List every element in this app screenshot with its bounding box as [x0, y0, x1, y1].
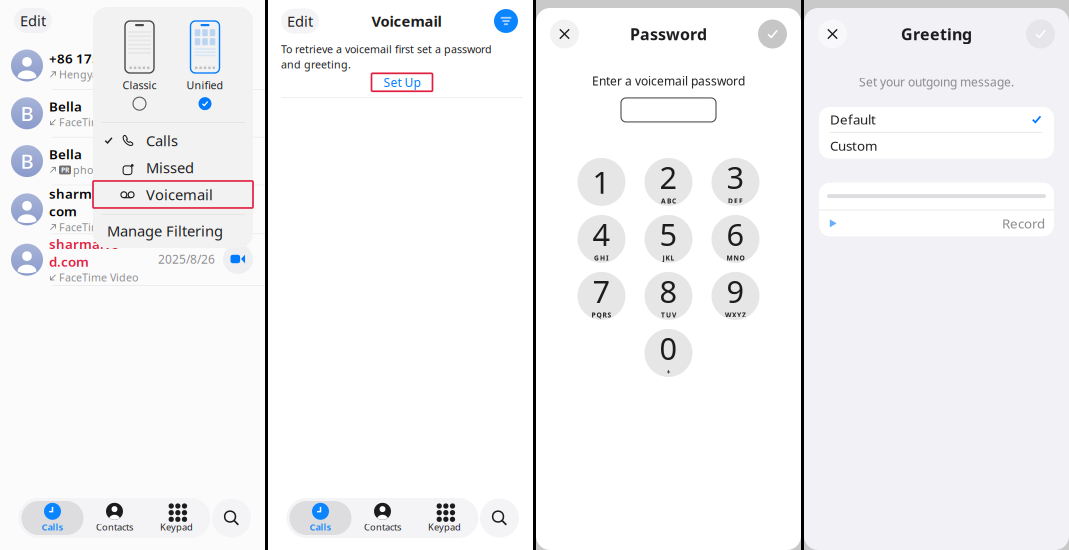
staticText: 9 [726, 271, 744, 311]
staticText: sharma.v [49, 185, 111, 202]
staticText: Bella [49, 97, 82, 115]
staticText: Hengyang [59, 67, 112, 81]
staticText: 0 [659, 328, 677, 368]
button[interactable]: Close [550, 19, 579, 48]
button[interactable]: Custom [819, 133, 1054, 159]
staticText: Bella [49, 145, 82, 163]
staticText: 1 [592, 162, 610, 202]
staticText: A B C [661, 196, 676, 205]
staticText: 4 [592, 214, 610, 254]
button[interactable]: Contacts [351, 501, 413, 535]
staticText: Keypad [160, 521, 193, 533]
staticText: P Q R S [591, 310, 611, 319]
staticText: sharma.vo [49, 235, 119, 253]
staticText: Classic [122, 78, 156, 92]
staticText: Enter a voicemail password [592, 73, 745, 89]
staticText: Set Up [383, 74, 420, 90]
button[interactable]: 6 [711, 215, 759, 263]
staticText: Calls [146, 131, 178, 150]
staticText: Custom [830, 137, 877, 154]
staticText: FaceTime [59, 220, 107, 234]
button[interactable]: Calls [93, 127, 253, 154]
button[interactable]: Set Up [371, 73, 432, 91]
button[interactable]: Record [819, 210, 1054, 236]
staticText: 2 [659, 157, 677, 197]
button[interactable]: Default [819, 107, 1054, 132]
staticText: 6 [726, 214, 744, 254]
staticText: phone [73, 163, 106, 177]
button[interactable]: Filter [494, 9, 518, 33]
staticText: 2025/8/26 [158, 251, 215, 267]
button[interactable]: Edit [14, 8, 52, 33]
staticText: Password [630, 23, 707, 45]
button[interactable]: 1 [577, 158, 625, 206]
staticText: +86 175 [49, 50, 100, 67]
staticText: + [666, 367, 670, 376]
staticText: Voicemail [146, 185, 213, 204]
button[interactable]: Calls [289, 501, 351, 535]
button[interactable]: 4 [577, 215, 625, 263]
staticText: W X Y Z [725, 310, 746, 319]
staticText: Record [1002, 214, 1045, 232]
staticText: FaceTime Video [59, 270, 138, 284]
staticText: and greeting. [281, 57, 351, 71]
button[interactable]: Missed [93, 154, 253, 181]
staticText: Unified [186, 78, 223, 92]
staticText: T U V [661, 310, 676, 319]
button[interactable]: Calls [21, 501, 83, 535]
button[interactable]: Keypad [145, 501, 207, 535]
button[interactable]: Done [1026, 19, 1055, 48]
button[interactable]: FaceTime Video [223, 244, 253, 274]
staticText: M N O [726, 253, 744, 262]
staticText: 3 [726, 157, 744, 197]
button[interactable]: Voicemail [93, 181, 253, 208]
staticText: Default [830, 111, 876, 128]
staticText: Keypad [428, 521, 461, 533]
staticText: 5 [659, 214, 677, 254]
button[interactable]: 8 [644, 272, 692, 320]
button[interactable]: Contacts [83, 501, 145, 535]
staticText: Voicemail [371, 11, 441, 31]
button[interactable]: Close [818, 19, 847, 48]
button[interactable]: 5 [644, 215, 692, 263]
staticText: Manage Filtering [107, 221, 223, 240]
staticText: G H I [594, 253, 609, 262]
button[interactable]: Done [758, 19, 787, 48]
staticText: com [49, 202, 77, 220]
staticText: Calls [309, 521, 331, 533]
staticText: Edit [20, 11, 46, 30]
staticText: FaceTime [59, 115, 107, 129]
staticText: 7 [592, 271, 610, 311]
staticText: B [20, 100, 33, 127]
staticText: Greeting [901, 23, 972, 45]
button[interactable]: Manage Filtering [93, 217, 253, 245]
staticText: d.com [49, 253, 89, 270]
button[interactable]: Keypad [413, 501, 475, 535]
staticText: PR [61, 165, 69, 174]
button[interactable]: 3 [711, 158, 759, 206]
button[interactable]: Edit [281, 8, 319, 33]
staticText: Edit [287, 11, 313, 31]
staticText: D E F [728, 196, 743, 205]
staticText: J K L [662, 253, 674, 262]
button[interactable]: 7 [577, 272, 625, 320]
staticText: Missed [146, 158, 194, 177]
staticText: Set your outgoing message. [859, 74, 1014, 90]
staticText: Contacts [364, 521, 401, 533]
staticText: Contacts [96, 521, 133, 533]
button[interactable]: Search [480, 498, 519, 537]
button[interactable]: 0 [644, 329, 692, 377]
staticText: Calls [41, 521, 63, 533]
button[interactable]: 9 [711, 272, 759, 320]
button[interactable]: 2 [644, 158, 692, 206]
button[interactable]: Search [212, 498, 251, 537]
staticText: B [20, 148, 33, 174]
staticText: 8 [659, 271, 677, 311]
staticText: To retrieve a voicemail first set a pass… [281, 42, 492, 56]
